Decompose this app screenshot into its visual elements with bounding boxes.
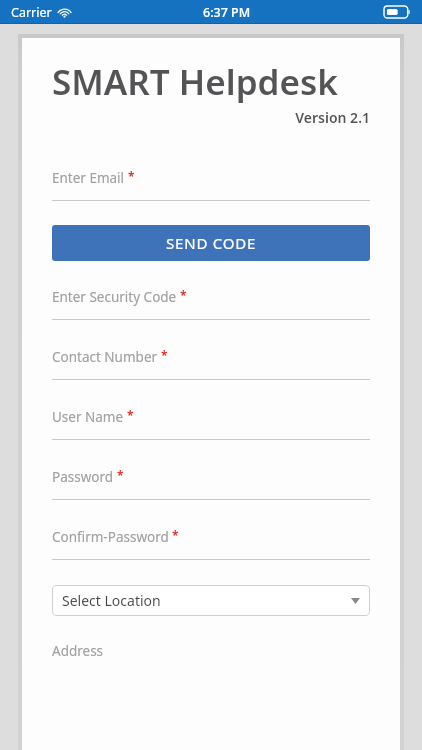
button[interactable]: Enter Security Code [52, 288, 370, 320]
staticText: * [127, 407, 134, 423]
staticText: * [180, 287, 187, 303]
button[interactable]: Contact Number [52, 348, 370, 380]
staticText: Carrier [11, 4, 52, 21]
staticText: Confirm-Password [52, 528, 169, 546]
staticText: * [161, 347, 168, 363]
staticText: Password [52, 468, 114, 486]
button[interactable]: Confirm-Password [52, 528, 370, 560]
staticText: * [172, 527, 179, 543]
staticText: Enter Security Code [52, 288, 177, 306]
staticText: SEND CODE [166, 233, 257, 253]
button[interactable]: Select Location [52, 585, 370, 616]
staticText: * [117, 467, 124, 483]
button[interactable]: Password [52, 468, 370, 500]
button[interactable]: SEND CODE [52, 225, 370, 261]
staticText: Contact Number [52, 348, 158, 366]
staticText: SMART Helpdesk [52, 58, 338, 106]
staticText: Address [52, 642, 104, 660]
button[interactable]: User Name [52, 408, 370, 440]
staticText: Version 2.1 [52, 108, 370, 127]
staticText: Enter Email [52, 169, 125, 187]
button[interactable]: Enter Email [52, 169, 370, 201]
staticText: 6:37 PM [203, 4, 251, 21]
button[interactable]: Address [52, 642, 370, 660]
staticText: User Name [52, 408, 124, 426]
staticText: * [128, 168, 135, 184]
staticText: Select Location [62, 591, 161, 610]
